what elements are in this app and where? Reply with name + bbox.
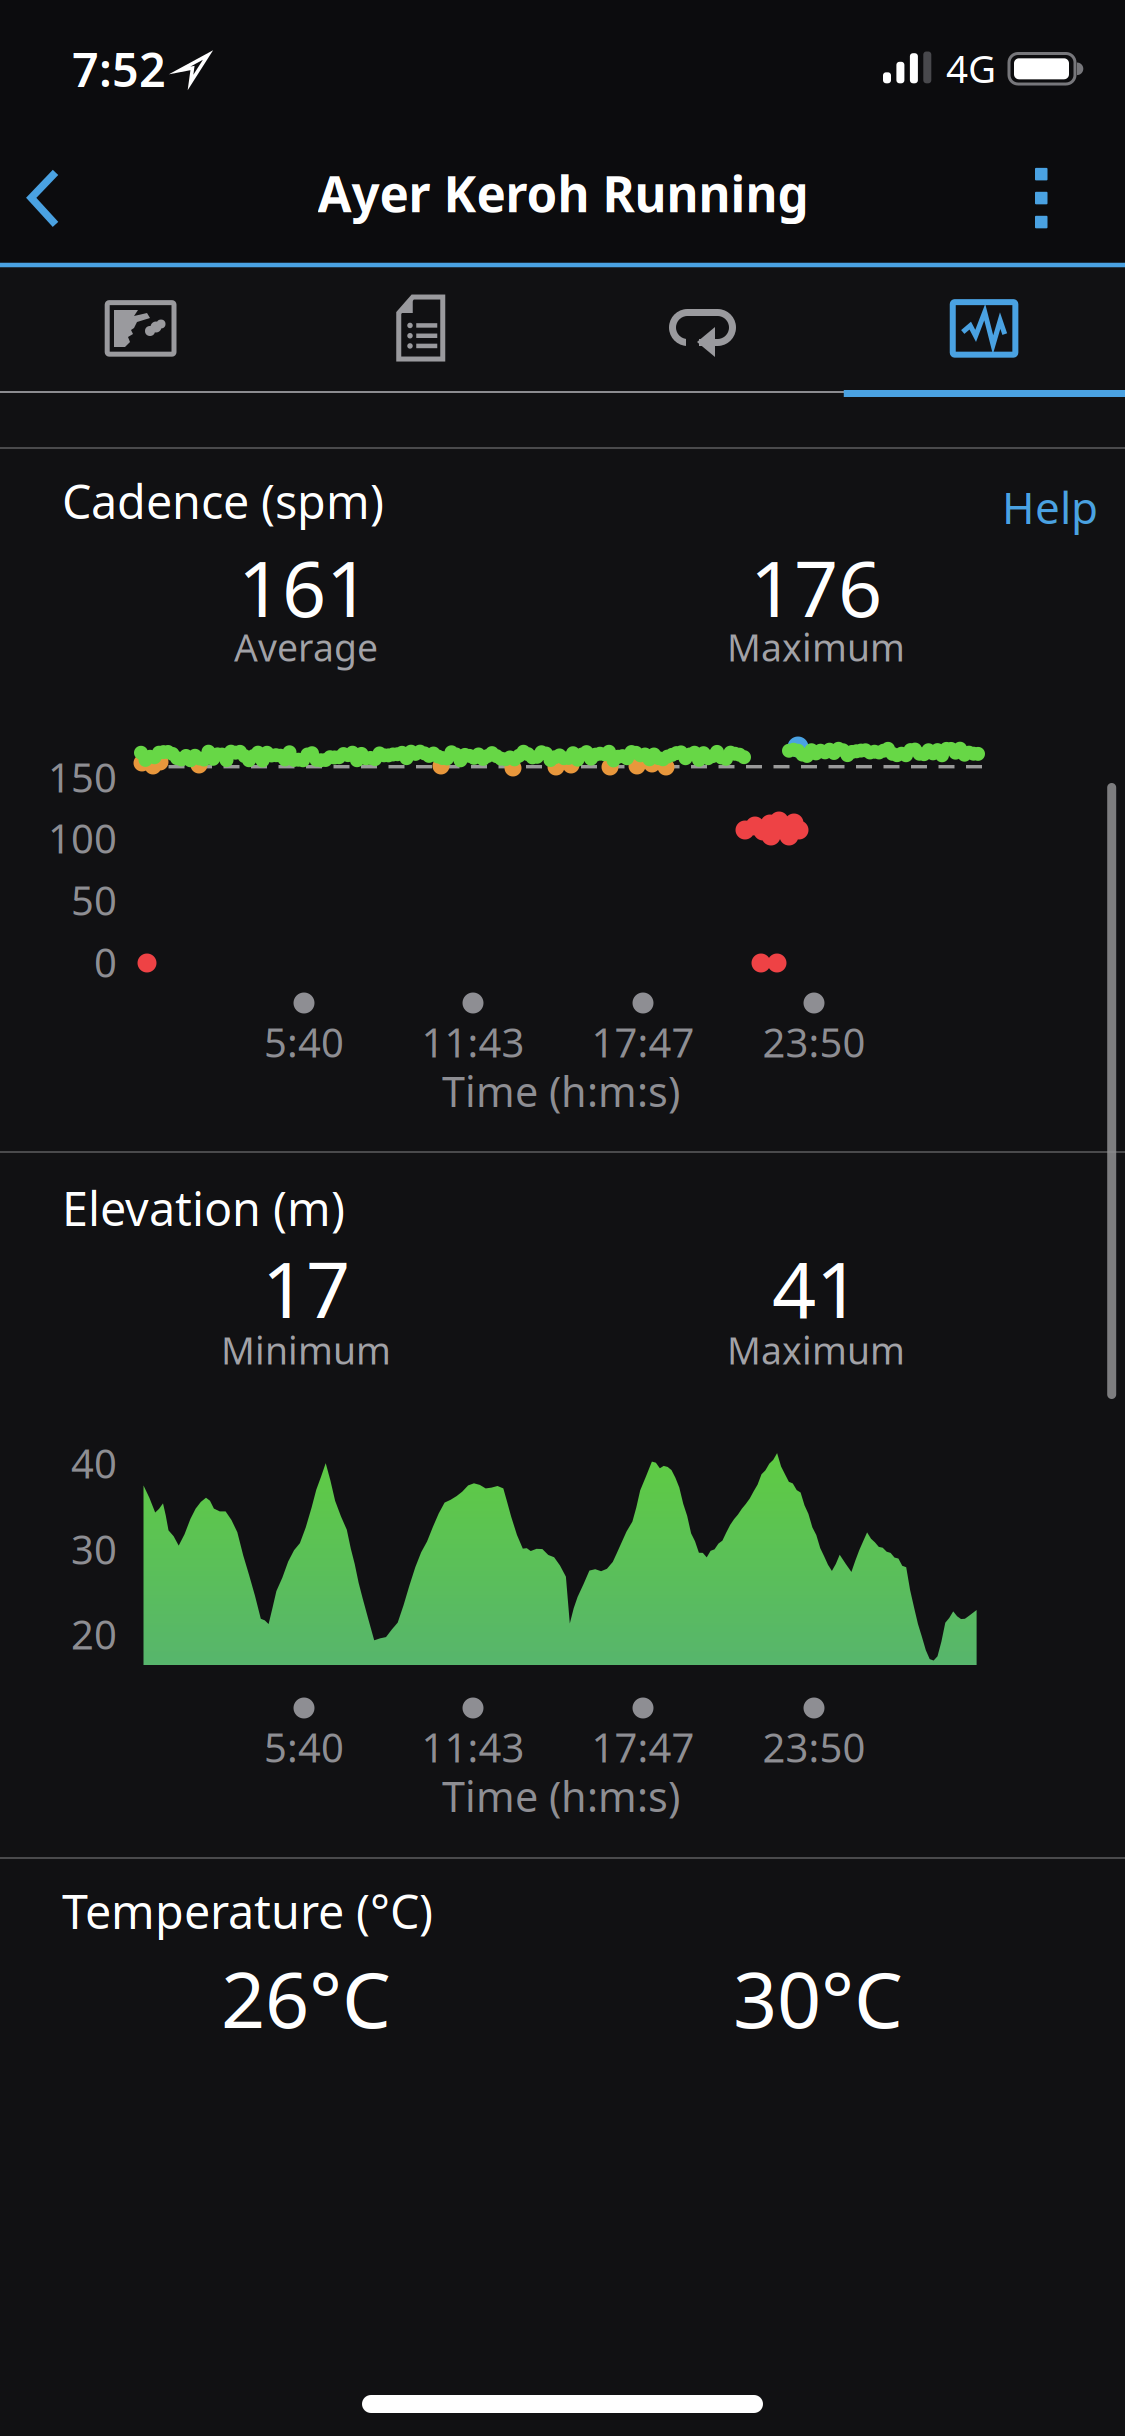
staticText: Time (h:m:s) <box>442 1064 680 1118</box>
button[interactable]: Charts <box>844 267 1125 391</box>
button[interactable]: Map <box>0 267 281 391</box>
staticText: 50 <box>71 873 117 926</box>
staticText: Average <box>234 622 378 672</box>
staticText: 161 <box>238 536 370 638</box>
staticText: 0 <box>94 935 117 988</box>
staticText: 23:50 <box>762 1015 865 1068</box>
button[interactable]: Details <box>281 267 562 391</box>
button[interactable]: Laps <box>562 267 844 391</box>
button[interactable]: Back <box>0 153 80 243</box>
staticText: 30°C <box>733 1947 903 2049</box>
staticText: 5:40 <box>264 1720 344 1773</box>
staticText: Minimum <box>221 1325 391 1375</box>
staticText: 4G <box>946 42 996 94</box>
staticText: Help <box>1002 478 1098 536</box>
staticText: 5:40 <box>264 1015 344 1068</box>
staticText: 17:47 <box>591 1720 694 1773</box>
staticText: 26°C <box>221 1947 391 2049</box>
staticText: Maximum <box>727 622 905 672</box>
staticText: 176 <box>750 536 882 638</box>
staticText: Maximum <box>727 1325 905 1375</box>
staticText: 17:47 <box>591 1015 694 1068</box>
staticText: 20 <box>71 1607 117 1660</box>
button[interactable]: Help <box>1002 478 1098 536</box>
staticText: Cadence (spm) <box>62 470 384 532</box>
staticText: Temperature (°C) <box>62 1880 433 1942</box>
staticText: Elevation (m) <box>62 1177 345 1239</box>
staticText: 17 <box>262 1237 350 1339</box>
button[interactable]: More <box>1006 153 1076 243</box>
staticText: 40 <box>71 1436 117 1489</box>
staticText: 11:43 <box>421 1015 524 1068</box>
staticText: 41 <box>772 1237 860 1339</box>
staticText: 30 <box>71 1522 117 1575</box>
staticText: 7:52 <box>72 38 166 100</box>
staticText: 150 <box>48 750 117 803</box>
staticText: 23:50 <box>762 1720 865 1773</box>
staticText: 100 <box>48 811 117 864</box>
staticText: 11:43 <box>421 1720 524 1773</box>
staticText: Time (h:m:s) <box>442 1769 680 1823</box>
staticText: Ayer Keroh Running <box>317 160 808 226</box>
